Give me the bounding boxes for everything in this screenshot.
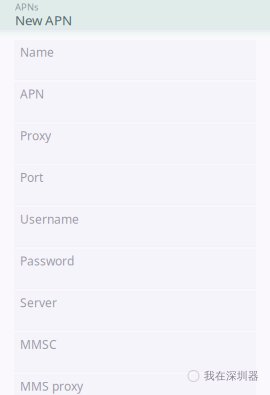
button[interactable]: APN [14, 82, 256, 122]
button[interactable]: Password [14, 249, 256, 289]
staticText: Name [20, 44, 54, 60]
staticText: New APN [15, 11, 72, 29]
button[interactable]: Username [14, 207, 256, 247]
button[interactable]: MMS proxy [14, 374, 256, 395]
staticText: Password [20, 253, 74, 269]
staticText: MMS proxy [20, 378, 83, 394]
staticText: APNs [15, 1, 38, 13]
button[interactable]: MMSC [14, 332, 256, 372]
button[interactable]: Name [14, 40, 256, 80]
button[interactable]: Server [14, 290, 256, 330]
staticText: Port [20, 169, 43, 185]
staticText: 我在深圳器 [204, 369, 259, 382]
staticText: Server [20, 294, 57, 310]
staticText: APN [20, 86, 44, 102]
staticText: Proxy [20, 127, 51, 143]
staticText: MMSC [20, 336, 57, 352]
button[interactable]: Port [14, 165, 256, 205]
button[interactable]: Proxy [14, 123, 256, 163]
staticText: Username [20, 211, 79, 227]
